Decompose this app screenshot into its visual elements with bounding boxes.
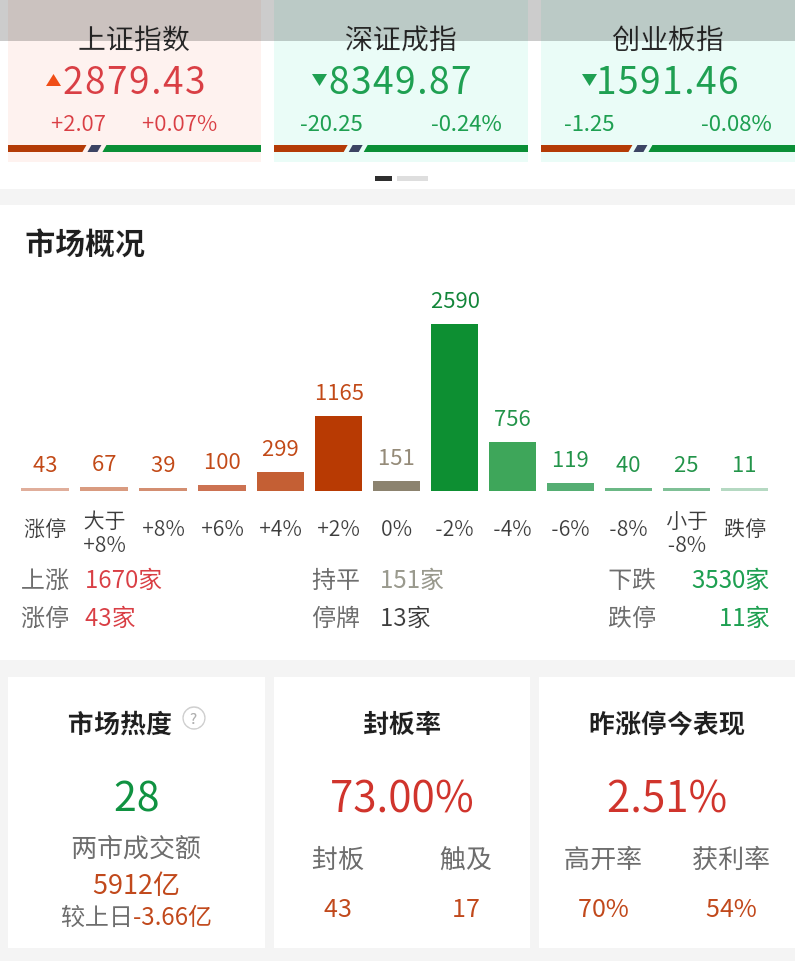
staticText: 高开率	[564, 838, 643, 864]
button[interactable]: 上证指数	[8, 0, 261, 162]
staticText: 小于 -8%	[666, 504, 708, 549]
staticText: 17	[452, 888, 480, 910]
staticText: 两市成交额	[71, 827, 202, 853]
staticText: 43家	[85, 598, 136, 629]
button[interactable]: 封板率	[274, 677, 530, 948]
staticText: +4%	[259, 512, 302, 542]
staticText: 跌停	[608, 598, 656, 629]
staticText: +2.07	[51, 105, 106, 131]
staticText: 3530家	[692, 560, 770, 591]
staticText: +2%	[317, 512, 360, 542]
staticText: 大于 +8%	[83, 504, 126, 549]
staticText: -3.66亿	[133, 897, 212, 919]
staticText: 较上日	[61, 897, 133, 919]
staticText: 11家	[719, 598, 770, 629]
staticText: 1670家	[85, 560, 163, 591]
staticText: 2879.43	[63, 51, 207, 91]
staticText: 市场热度	[68, 703, 173, 733]
staticText: 停牌	[312, 598, 360, 629]
staticText: 11	[732, 446, 757, 472]
staticText: +8%	[142, 512, 185, 542]
staticText: 40	[616, 446, 641, 472]
button[interactable]: 市场热度说明	[182, 706, 206, 730]
staticText: -6%	[551, 512, 590, 542]
staticText: -0.24%	[431, 105, 502, 131]
staticText: 封板	[312, 838, 365, 864]
staticText: 151	[378, 439, 415, 465]
staticText: 54%	[706, 888, 757, 910]
staticText: 8349.87	[329, 51, 473, 91]
button[interactable]: 市场热度	[8, 677, 265, 948]
staticText: 25	[674, 446, 699, 472]
staticText: 触及	[440, 838, 493, 864]
staticText: -2%	[435, 512, 474, 542]
button[interactable]: 昨涨停今表现	[539, 677, 795, 948]
staticText: 13家	[380, 598, 431, 629]
staticText: 跌停	[724, 512, 766, 542]
staticText: ?	[190, 707, 198, 729]
staticText: 2.51%	[607, 763, 728, 797]
button[interactable]: 创业板指	[541, 0, 795, 162]
staticText: 昨涨停今表现	[589, 703, 746, 733]
staticText: 0%	[381, 512, 412, 542]
staticText: -1.25	[564, 105, 615, 131]
staticText: 43	[324, 888, 352, 910]
staticText: 深证成指	[345, 17, 458, 51]
staticText: 2590	[431, 282, 478, 308]
staticText: 涨停	[21, 598, 69, 629]
staticText: 70%	[578, 888, 629, 910]
staticText: 上涨	[21, 560, 69, 591]
staticText: 39	[151, 446, 176, 472]
staticText: 43	[33, 446, 58, 472]
staticText: -20.25	[300, 105, 363, 131]
staticText: 获利率	[692, 838, 771, 864]
staticText: -0.08%	[701, 105, 772, 131]
staticText: 1165	[315, 374, 362, 400]
staticText: -8%	[609, 512, 648, 542]
staticText: 下跌	[608, 560, 656, 591]
staticText: 756	[494, 400, 531, 426]
staticText: 28	[114, 763, 160, 797]
staticText: 67	[92, 445, 117, 471]
staticText: 5912亿	[93, 863, 180, 885]
staticText: 299	[262, 430, 299, 456]
staticText: 100	[204, 443, 241, 469]
button[interactable]: 深证成指	[274, 0, 528, 162]
staticText: 持平	[312, 560, 360, 591]
staticText: 创业板指	[612, 17, 725, 51]
staticText: 73.00%	[330, 763, 474, 797]
staticText: 119	[552, 441, 589, 467]
staticText: 1591.46	[596, 51, 740, 91]
staticText: 上证指数	[78, 17, 191, 51]
staticText: +6%	[201, 512, 244, 542]
staticText: 151家	[380, 560, 444, 591]
staticText: +0.07%	[142, 105, 218, 131]
staticText: 市场概况	[25, 219, 145, 256]
staticText: 涨停	[24, 512, 66, 542]
staticText: -4%	[493, 512, 532, 542]
staticText: 封板率	[363, 703, 442, 733]
